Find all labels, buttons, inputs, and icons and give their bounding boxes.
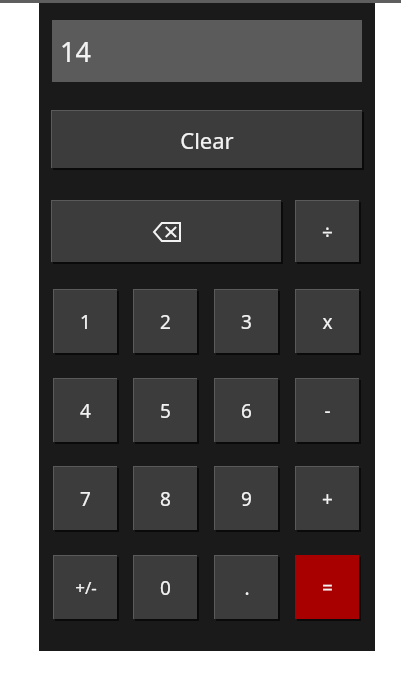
staticText: 6 xyxy=(241,398,252,424)
button[interactable]: +/- xyxy=(53,555,117,619)
staticText: 3 xyxy=(241,309,252,335)
button[interactable]: + xyxy=(295,466,359,530)
staticText: ÷ xyxy=(322,219,333,245)
staticText: 9 xyxy=(241,486,252,512)
button[interactable]: x xyxy=(295,289,359,353)
button[interactable]: ÷ xyxy=(295,200,359,262)
button[interactable]: - xyxy=(295,378,359,442)
staticText: . xyxy=(244,575,250,601)
staticText: = xyxy=(322,575,333,601)
staticText: 4 xyxy=(80,398,91,424)
button[interactable]: 0 xyxy=(133,555,197,619)
button[interactable]: 9 xyxy=(214,466,278,530)
staticText: 14 xyxy=(60,33,91,70)
button[interactable]: 1 xyxy=(53,289,117,353)
staticText: 8 xyxy=(160,486,171,512)
staticText: 7 xyxy=(80,486,91,512)
button[interactable]: 5 xyxy=(133,378,197,442)
button[interactable]: 6 xyxy=(214,378,278,442)
button[interactable]: = xyxy=(295,555,359,619)
button[interactable]: 7 xyxy=(53,466,117,530)
button[interactable]: Clear xyxy=(51,110,362,168)
button[interactable]: 2 xyxy=(133,289,197,353)
staticText: 5 xyxy=(160,398,171,424)
button[interactable]: 4 xyxy=(53,378,117,442)
button[interactable]: . xyxy=(214,555,278,619)
staticText: 2 xyxy=(160,309,171,335)
staticText: +/- xyxy=(75,576,97,599)
staticText: 0 xyxy=(160,575,171,601)
staticText: Clear xyxy=(180,125,234,155)
staticText: x xyxy=(322,309,333,335)
staticText: 1 xyxy=(80,309,91,335)
staticText: - xyxy=(324,398,331,424)
button[interactable] xyxy=(51,200,281,262)
button[interactable]: 8 xyxy=(133,466,197,530)
button[interactable]: 3 xyxy=(214,289,278,353)
staticText: + xyxy=(322,486,333,512)
